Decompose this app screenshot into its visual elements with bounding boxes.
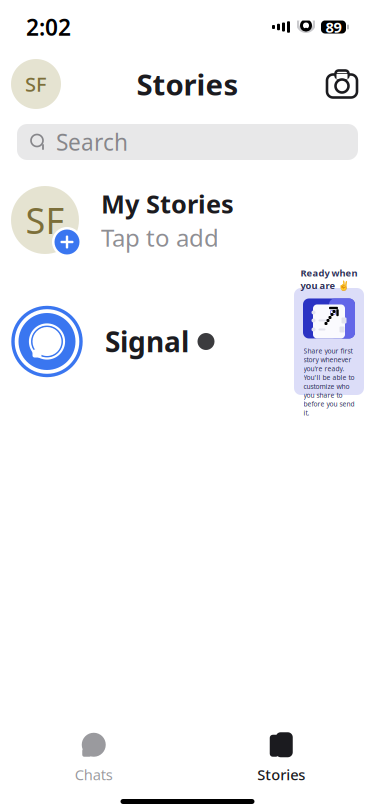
staticText: Stories [257, 765, 305, 784]
button[interactable]: SF [0, 186, 375, 254]
staticText: Ready when you are ✌️ [300, 267, 357, 291]
button[interactable]: Signal [0, 288, 375, 395]
button[interactable]: Search [17, 124, 358, 160]
staticText: 89 [325, 17, 341, 37]
staticText: SF [25, 196, 64, 244]
staticText: Tap to add [101, 221, 219, 253]
staticText: Stories [136, 64, 238, 103]
staticText: 2:02 [26, 12, 71, 42]
staticText: Share your first story whenever you're r… [303, 346, 354, 417]
button[interactable]: Camera [320, 62, 364, 106]
staticText: Search [56, 127, 128, 157]
staticText: My Stories [101, 187, 234, 220]
staticText: Chats [75, 765, 113, 784]
staticText: SF [25, 71, 47, 97]
staticText: Signal [105, 323, 189, 360]
button[interactable]: Stories [187, 732, 375, 784]
button[interactable]: Profile [11, 59, 61, 109]
button[interactable]: Chats [0, 732, 187, 784]
